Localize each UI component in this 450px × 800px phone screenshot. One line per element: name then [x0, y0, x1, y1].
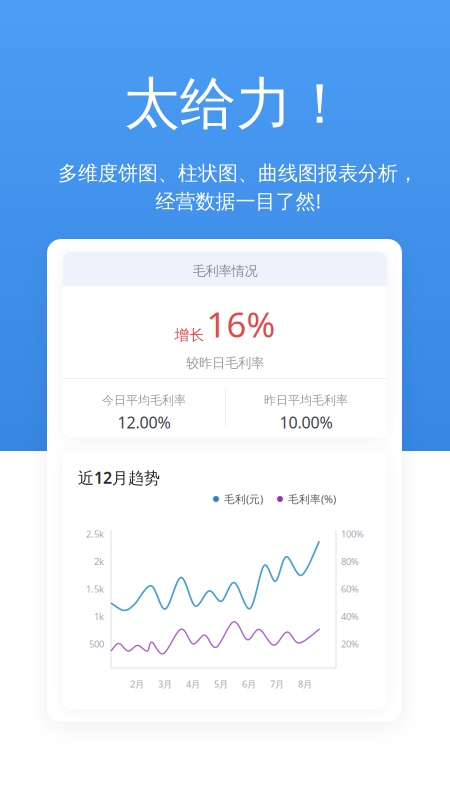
staticText: 多维度饼图、柱状图、曲线图报表分析， [58, 161, 418, 186]
staticText: 20% [341, 638, 359, 650]
staticText: 80% [341, 555, 359, 568]
staticText: 2.5k [86, 528, 104, 540]
staticText: 增长 [174, 326, 204, 344]
staticText: 8月 [298, 678, 312, 690]
staticText: 7月 [270, 678, 284, 690]
staticText: 毛利(元) [224, 492, 263, 506]
staticText: 500 [89, 638, 104, 650]
staticText: 100% [341, 528, 364, 540]
staticText: 昨日平均毛利率 [264, 393, 348, 408]
staticText: 今日平均毛利率 [102, 393, 186, 408]
staticText: 毛利率(%) [288, 492, 336, 506]
staticText: 2月 [130, 678, 144, 690]
staticText: 较昨日毛利率 [186, 355, 264, 371]
staticText: 1k [94, 610, 104, 623]
staticText: 太给力！ [124, 70, 348, 138]
staticText: 毛利率情况 [192, 263, 257, 279]
staticText: 10.00% [279, 412, 332, 433]
staticText: 5月 [214, 678, 228, 690]
staticText: 2k [94, 555, 104, 568]
staticText: 12.00% [117, 412, 170, 433]
staticText: 40% [341, 610, 359, 623]
staticText: 经营数据一目了然! [155, 188, 320, 214]
staticText: 6月 [242, 678, 256, 690]
staticText: 4月 [186, 678, 200, 690]
staticText: 16% [206, 301, 275, 347]
staticText: 60% [341, 583, 359, 595]
staticText: 3月 [158, 678, 172, 690]
staticText: 1.5k [86, 583, 104, 595]
staticText: 近12月趋势 [78, 467, 160, 488]
